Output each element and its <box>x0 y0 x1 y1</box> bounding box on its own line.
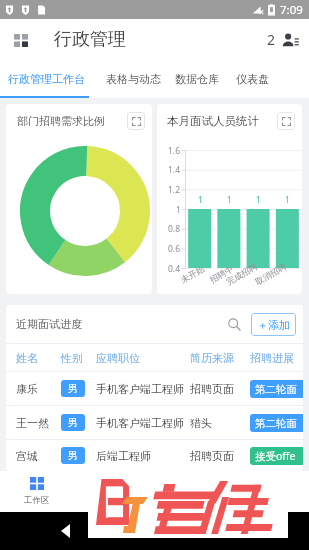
staticText: 0.4 <box>168 263 181 275</box>
button[interactable]: Back <box>54 520 76 542</box>
staticText: 部门招聘需求比例 <box>17 114 105 128</box>
staticText: 未开始 <box>179 263 207 286</box>
staticText: 1 <box>198 194 203 206</box>
staticText: 招聘中 <box>208 263 236 286</box>
staticText: 2 <box>267 30 276 49</box>
staticText: 男 <box>68 449 78 462</box>
staticText: 1 <box>285 194 290 206</box>
staticText: 本月面试人员统计 <box>167 114 259 128</box>
staticText: 男 <box>68 416 78 429</box>
staticText: 第二轮面 <box>255 383 297 396</box>
button[interactable]: ＋添加 <box>251 313 296 336</box>
staticText: 接受offe <box>255 449 296 463</box>
staticText: ＋添加 <box>257 318 290 332</box>
staticText: 性别 <box>61 351 83 365</box>
staticText: 1 <box>227 194 232 206</box>
staticText: 第二轮面 <box>255 417 297 430</box>
staticText: 工作区 <box>24 495 50 506</box>
staticText: 行政管理 <box>54 28 126 51</box>
staticText: 0.6 <box>168 243 181 255</box>
staticText: 1.2 <box>168 184 181 196</box>
staticText: 数据仓库 <box>175 72 219 86</box>
staticText: 仪表盘 <box>236 72 269 86</box>
button[interactable]: 行政管理工作台 <box>8 60 85 98</box>
staticText: 手机客户端工程师 <box>96 382 184 396</box>
staticText: 近期面试进度 <box>16 317 82 331</box>
button[interactable]: 王一然 <box>6 406 303 439</box>
button[interactable]: Expand <box>127 112 145 130</box>
button[interactable]: 宫城 <box>6 440 303 471</box>
staticText: 手机客户端工程师 <box>96 416 184 430</box>
button[interactable]: Members <box>260 23 306 56</box>
staticText: 男 <box>68 382 78 395</box>
staticText: 后端工程师 <box>96 449 151 463</box>
staticText: 王一然 <box>16 416 49 430</box>
staticText: 简历来源 <box>190 351 234 365</box>
staticText: 1 <box>176 204 181 216</box>
staticText: 行政管理工作台 <box>8 72 85 86</box>
button[interactable]: 仪表盘 <box>236 60 269 98</box>
staticText: 7:09 <box>280 2 303 18</box>
button[interactable]: Expand <box>277 112 295 130</box>
staticText: 1 <box>256 194 261 206</box>
staticText: 姓名 <box>16 351 38 365</box>
staticText: 应聘职位 <box>96 351 140 365</box>
staticText: 0.8 <box>168 223 181 235</box>
staticText: 完成招聘 <box>224 261 259 288</box>
staticText: 表格与动态 <box>106 72 161 86</box>
button[interactable]: Search <box>223 313 245 335</box>
button[interactable]: 表格与动态 <box>106 60 161 98</box>
button[interactable]: 数据仓库 <box>175 60 219 98</box>
staticText: 宫城 <box>16 449 38 463</box>
staticText: 招聘页面 <box>190 382 234 396</box>
staticText: 康乐 <box>16 382 38 396</box>
staticText: 取消招聘 <box>253 261 288 288</box>
staticText: 招聘页面 <box>190 449 234 463</box>
staticText: 招聘进展 <box>250 351 294 365</box>
button[interactable]: 康乐 <box>6 372 303 405</box>
button[interactable]: 工作区 <box>0 471 74 512</box>
button[interactable]: Menu <box>7 26 35 54</box>
staticText: 猎头 <box>190 416 212 430</box>
staticText: 1.6 <box>168 145 181 157</box>
staticText: 1.4 <box>168 164 181 176</box>
